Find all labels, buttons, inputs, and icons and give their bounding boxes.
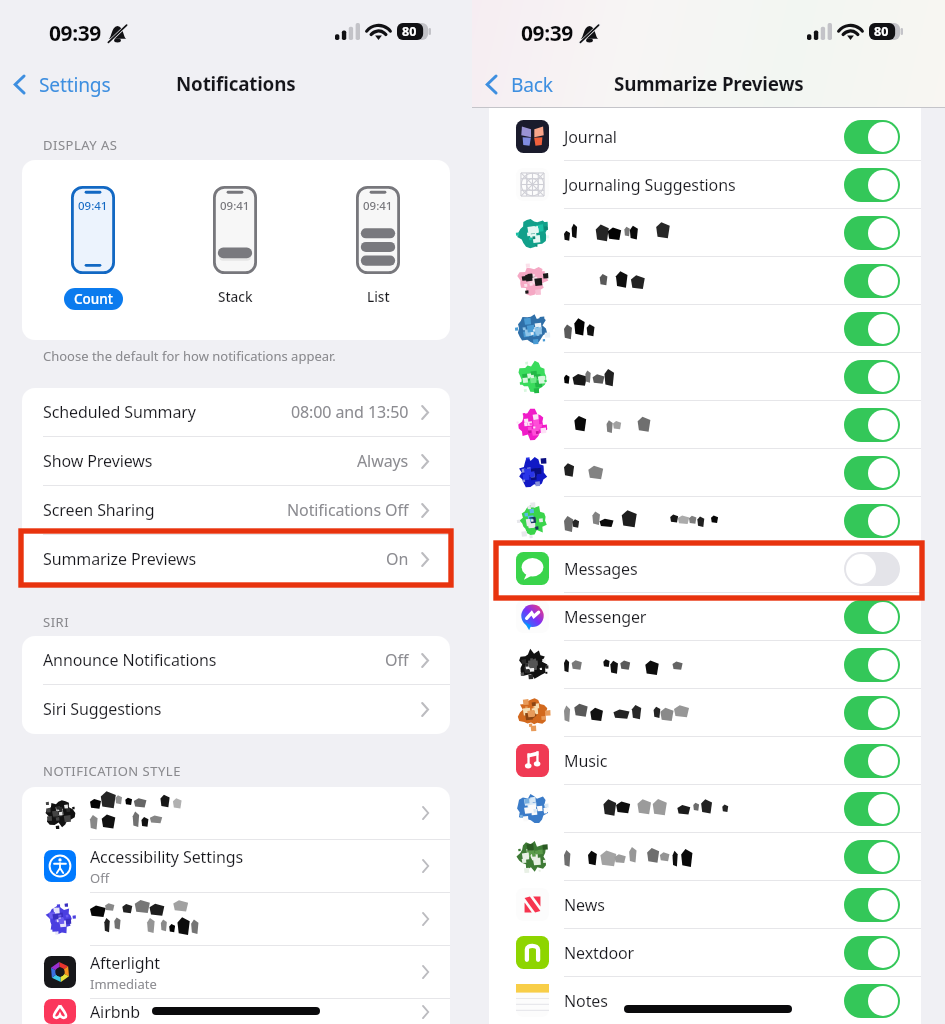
staticText: Journal xyxy=(564,126,617,148)
button[interactable]: App notification summaries on xyxy=(844,312,900,346)
staticText: Choose the default for how notifications… xyxy=(43,347,336,365)
staticText: News xyxy=(564,894,605,916)
button[interactable]: Siri Suggestions xyxy=(22,685,450,733)
button[interactable]: App notification summaries on xyxy=(844,264,900,298)
staticText: DISPLAY AS xyxy=(43,136,118,154)
staticText: Notifications xyxy=(176,71,296,97)
button[interactable]: App notification summaries on xyxy=(844,504,900,538)
staticText: 08:00 and 13:50 xyxy=(291,401,409,423)
button[interactable]: App notification summaries on xyxy=(844,408,900,442)
button[interactable]: App row xyxy=(489,353,921,400)
staticText: NOTIFICATION STYLE xyxy=(43,762,181,780)
staticText: Summarize Previews xyxy=(43,548,197,570)
button[interactable]: Journaling Suggestions xyxy=(489,161,921,208)
staticText: Scheduled Summary xyxy=(43,401,196,423)
button[interactable]: App notification summaries on xyxy=(844,648,900,682)
button[interactable]: Journal notification summaries on xyxy=(844,120,900,154)
staticText: 09:41 xyxy=(78,198,108,214)
staticText: Journaling Suggestions xyxy=(564,174,736,196)
staticText: Accessibility Settings xyxy=(90,846,244,868)
button[interactable]: Nextdoor notification summaries on xyxy=(844,936,900,970)
button[interactable]: App row xyxy=(489,305,921,352)
staticText: Airbnb xyxy=(90,1001,140,1023)
button[interactable]: Back to Back xyxy=(483,66,555,102)
button[interactable]: App notification summaries on xyxy=(844,696,900,730)
button[interactable]: App row xyxy=(489,257,921,304)
staticText: Siri Suggestions xyxy=(43,698,162,720)
button[interactable]: App row xyxy=(489,497,921,544)
staticText: 80 xyxy=(402,23,417,40)
button[interactable]: Journaling Suggestions notification summ… xyxy=(844,168,900,202)
button[interactable]: Messages notification summaries off xyxy=(844,552,900,586)
button[interactable]: Music notification summaries on xyxy=(844,744,900,778)
staticText: Announce Notifications xyxy=(43,649,217,671)
button[interactable]: List xyxy=(318,186,438,306)
button[interactable]: Messages xyxy=(489,545,921,592)
button[interactable]: Screen Sharing xyxy=(22,486,450,534)
button[interactable]: App notification summaries on xyxy=(844,456,900,490)
button[interactable]: Accessibility Settings xyxy=(22,840,450,892)
button[interactable]: Notes xyxy=(489,977,921,1024)
staticText: Immediate xyxy=(90,975,157,993)
staticText: Show Previews xyxy=(43,450,153,472)
button[interactable]: News xyxy=(489,881,921,928)
button[interactable]: Show Previews xyxy=(22,437,450,485)
button[interactable]: App row xyxy=(489,209,921,256)
staticText: Back xyxy=(511,71,553,97)
button[interactable]: Back to Settings xyxy=(11,66,113,102)
button[interactable]: Scheduled Summary xyxy=(22,388,450,436)
staticText: Off xyxy=(90,869,110,887)
staticText: Stack xyxy=(218,288,253,306)
staticText: Count xyxy=(74,290,113,308)
button[interactable]: App row xyxy=(489,833,921,880)
staticText: Messages xyxy=(564,558,638,580)
button[interactable]: App notification summaries on xyxy=(844,840,900,874)
button[interactable]: App row xyxy=(489,449,921,496)
staticText: 09:41 xyxy=(220,198,250,214)
button[interactable]: Summarize Previews xyxy=(22,535,450,583)
staticText: 09:41 xyxy=(363,198,393,214)
staticText: Messenger xyxy=(564,606,647,628)
staticText: Off xyxy=(385,649,409,671)
staticText: 09:39 xyxy=(49,19,101,48)
button[interactable]: Count xyxy=(33,186,153,310)
staticText: SIRI xyxy=(43,613,70,631)
staticText: Screen Sharing xyxy=(43,499,155,521)
staticText: Always xyxy=(357,450,409,472)
button[interactable]: Messenger xyxy=(489,593,921,640)
staticText: On xyxy=(386,548,409,570)
button[interactable]: Notes notification summaries on xyxy=(844,984,900,1018)
staticText: Nextdoor xyxy=(564,942,635,964)
staticText: Afterlight xyxy=(90,952,160,974)
staticText: Settings xyxy=(39,71,111,97)
button[interactable]: News notification summaries on xyxy=(844,888,900,922)
staticText: 80 xyxy=(874,23,889,40)
staticText: Notes xyxy=(564,990,608,1012)
button[interactable]: Airbnb xyxy=(22,999,450,1024)
button[interactable]: Announce Notifications xyxy=(22,636,450,684)
button[interactable]: App notification summaries on xyxy=(844,792,900,826)
staticText: 09:39 xyxy=(521,19,573,48)
button[interactable]: Afterlight xyxy=(22,946,450,998)
button[interactable]: App notification summaries on xyxy=(844,216,900,250)
staticText: Summarize Previews xyxy=(614,71,804,97)
button[interactable]: App row xyxy=(489,689,921,736)
button[interactable]: Stack xyxy=(175,186,295,306)
button[interactable]: Messenger notification summaries on xyxy=(844,600,900,634)
button[interactable]: App settings xyxy=(22,893,450,945)
staticText: Music xyxy=(564,750,608,772)
button[interactable]: App notification summaries on xyxy=(844,360,900,394)
button[interactable]: App row xyxy=(489,785,921,832)
button[interactable]: App row xyxy=(489,641,921,688)
button[interactable]: App row xyxy=(489,401,921,448)
button[interactable]: Nextdoor xyxy=(489,929,921,976)
button[interactable]: Journal xyxy=(489,113,921,160)
button[interactable]: App settings xyxy=(22,787,450,839)
staticText: List xyxy=(367,288,390,306)
staticText: Notifications Off xyxy=(287,499,409,521)
button[interactable]: Music xyxy=(489,737,921,784)
